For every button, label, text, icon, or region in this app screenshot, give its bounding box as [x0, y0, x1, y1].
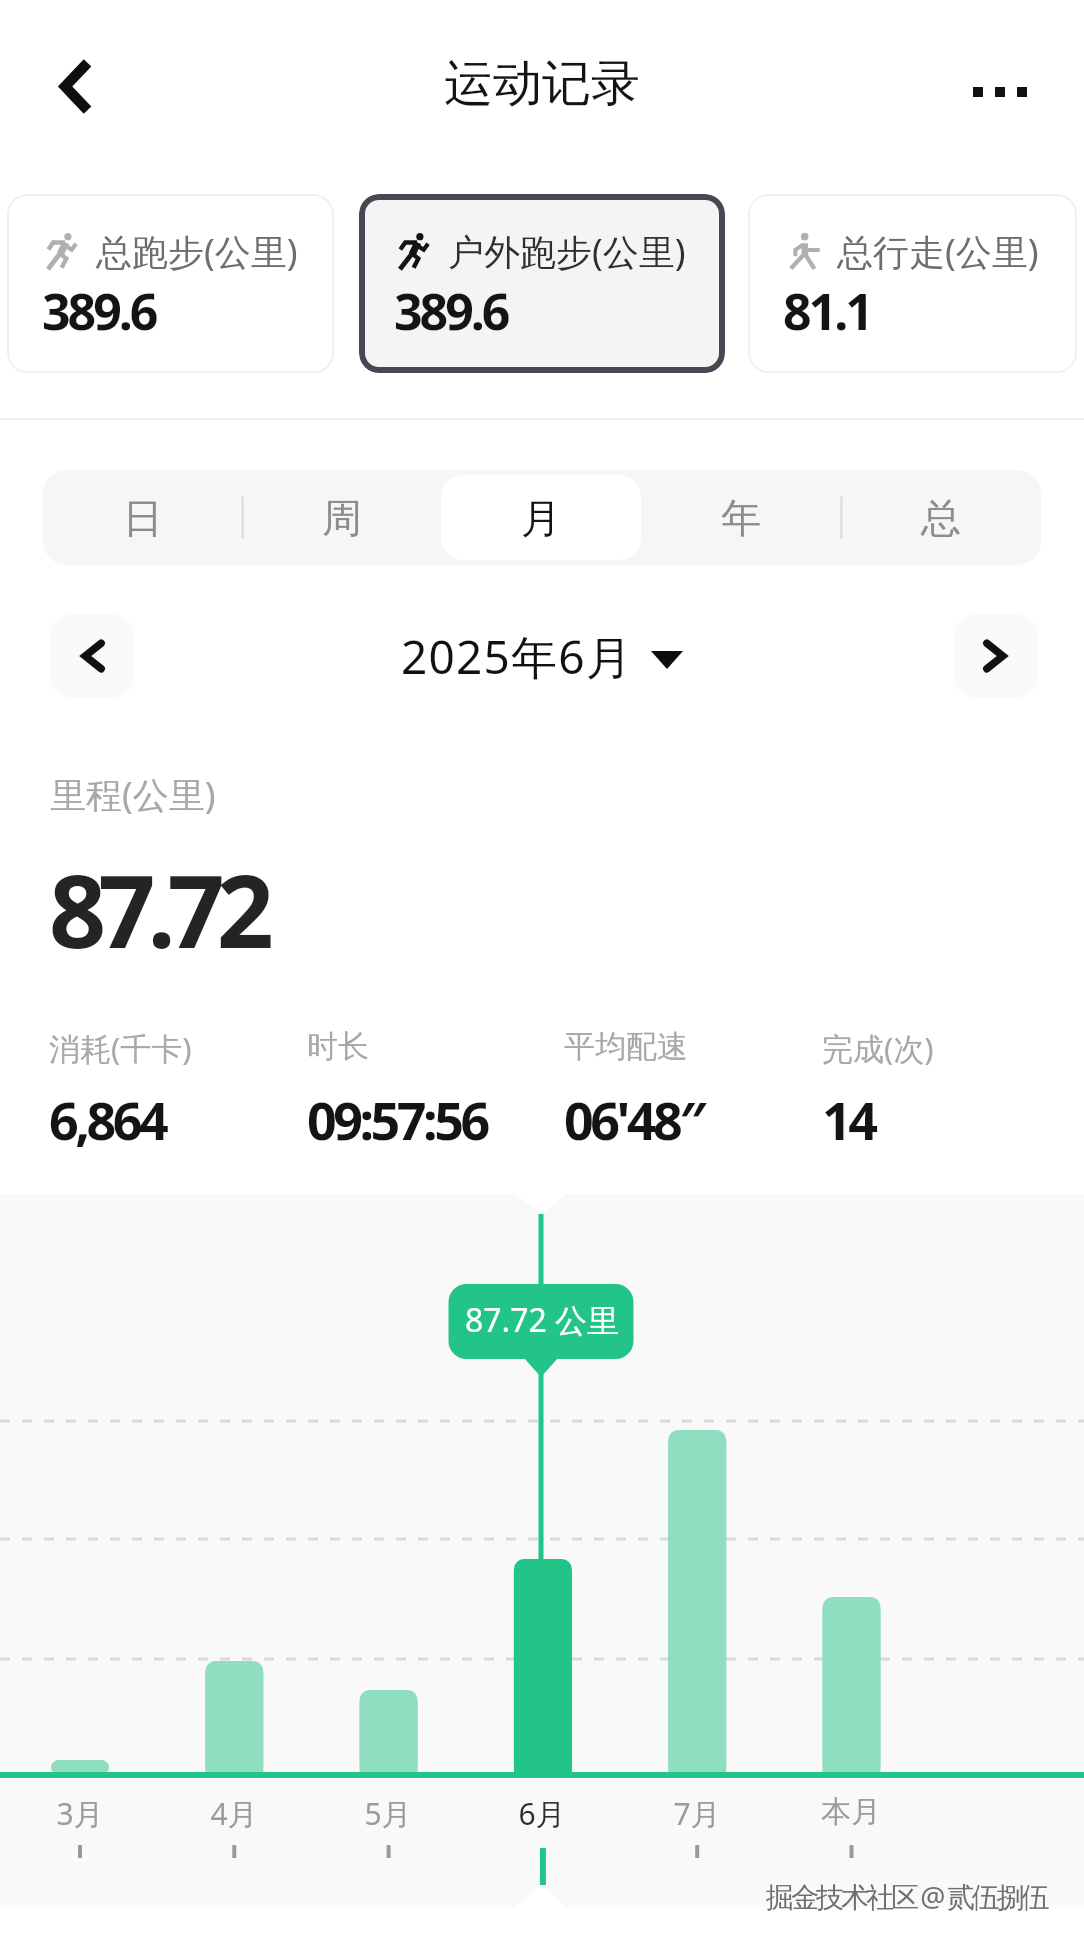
staticText: 消耗(千卡): [49, 1027, 192, 1069]
staticText: 平均配速: [564, 1027, 688, 1066]
staticText: 掘金技术社区 @ 贰伍捌伍: [766, 1877, 1047, 1915]
button[interactable]: 总: [841, 475, 1041, 560]
staticText: 周: [322, 493, 362, 543]
button[interactable]: 总跑步(公里): [7, 194, 334, 373]
button[interactable]: 6月: [465, 1194, 619, 1907]
button[interactable]: 4月: [157, 1194, 311, 1907]
button[interactable]: 年: [641, 475, 841, 560]
staticText: 完成(次): [822, 1027, 934, 1069]
staticText: 5月: [364, 1793, 412, 1834]
staticText: 6月: [518, 1793, 566, 1834]
button[interactable]: Next month: [954, 614, 1038, 698]
staticText: 87.72: [49, 841, 266, 977]
staticText: 09:57:56: [307, 1084, 487, 1155]
staticText: 总跑步(公里): [96, 227, 298, 276]
button[interactable]: 5月: [311, 1194, 465, 1907]
button[interactable]: 周: [242, 475, 441, 560]
staticText: 总行走(公里): [837, 227, 1039, 276]
staticText: 14: [822, 1084, 875, 1155]
button[interactable]: 3月: [3, 1194, 157, 1907]
button[interactable]: 月: [441, 475, 641, 560]
button[interactable]: More options: [950, 42, 1050, 142]
staticText: 年: [721, 493, 761, 543]
staticText: 总: [921, 493, 961, 543]
staticText: 2025年6月: [401, 625, 633, 688]
button[interactable]: Previous month: [50, 614, 134, 698]
staticText: 81.1: [783, 277, 871, 345]
staticText: 月: [521, 493, 561, 543]
staticText: 7月: [673, 1793, 721, 1834]
staticText: 户外跑步(公里): [448, 227, 686, 276]
button[interactable]: 总行走(公里): [748, 194, 1077, 373]
staticText: 06'48″: [564, 1084, 704, 1155]
staticText: 里程(公里): [50, 770, 216, 819]
staticText: 389.6: [42, 277, 156, 345]
staticText: 本月: [821, 1793, 881, 1831]
staticText: 6,864: [49, 1084, 166, 1155]
button[interactable]: 7月: [620, 1194, 774, 1907]
button[interactable]: 2025年6月: [401, 625, 683, 688]
staticText: 日: [123, 493, 163, 543]
staticText: 3月: [56, 1793, 104, 1834]
staticText: 87.72 公里: [465, 1298, 620, 1342]
button[interactable]: 日: [43, 475, 242, 560]
button[interactable]: Back: [32, 42, 120, 130]
staticText: 389.6: [394, 277, 508, 345]
button[interactable]: 本月: [774, 1194, 928, 1907]
staticText: 运动记录: [444, 53, 640, 115]
staticText: 时长: [307, 1027, 369, 1066]
staticText: 4月: [210, 1793, 258, 1834]
button[interactable]: 户外跑步(公里): [359, 194, 725, 373]
